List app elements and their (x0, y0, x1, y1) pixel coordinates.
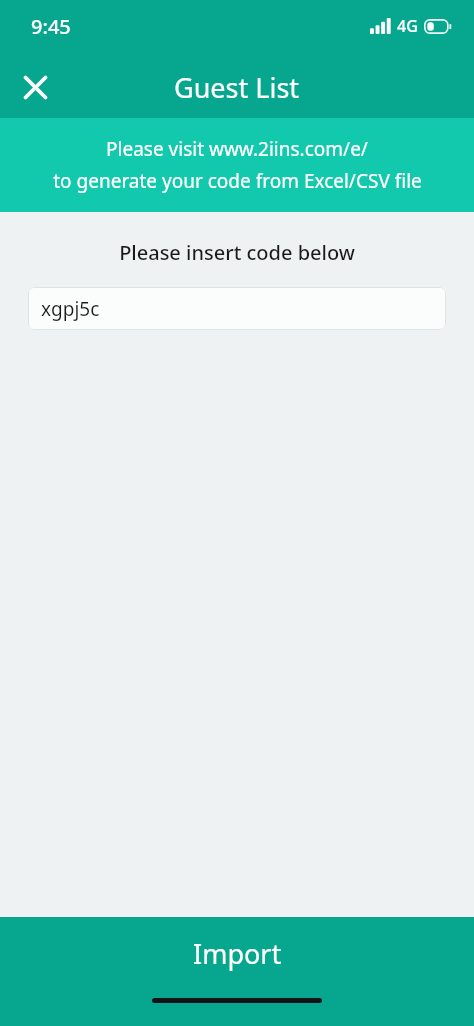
staticText: xgpj5c (41, 296, 100, 322)
staticText: to generate your code from Excel/CSV fil… (53, 168, 422, 194)
button[interactable]: Close (12, 64, 58, 110)
button[interactable]: xgpj5c (28, 287, 446, 330)
staticText: 4G (397, 15, 418, 37)
staticText: Guest List (174, 69, 300, 106)
staticText: 9:45 (31, 13, 71, 40)
staticText: Please visit www.2iins.com/e/ (106, 136, 368, 162)
staticText: Import (193, 935, 282, 972)
button[interactable]: Import (0, 917, 474, 1026)
staticText: Please insert code below (119, 239, 355, 266)
